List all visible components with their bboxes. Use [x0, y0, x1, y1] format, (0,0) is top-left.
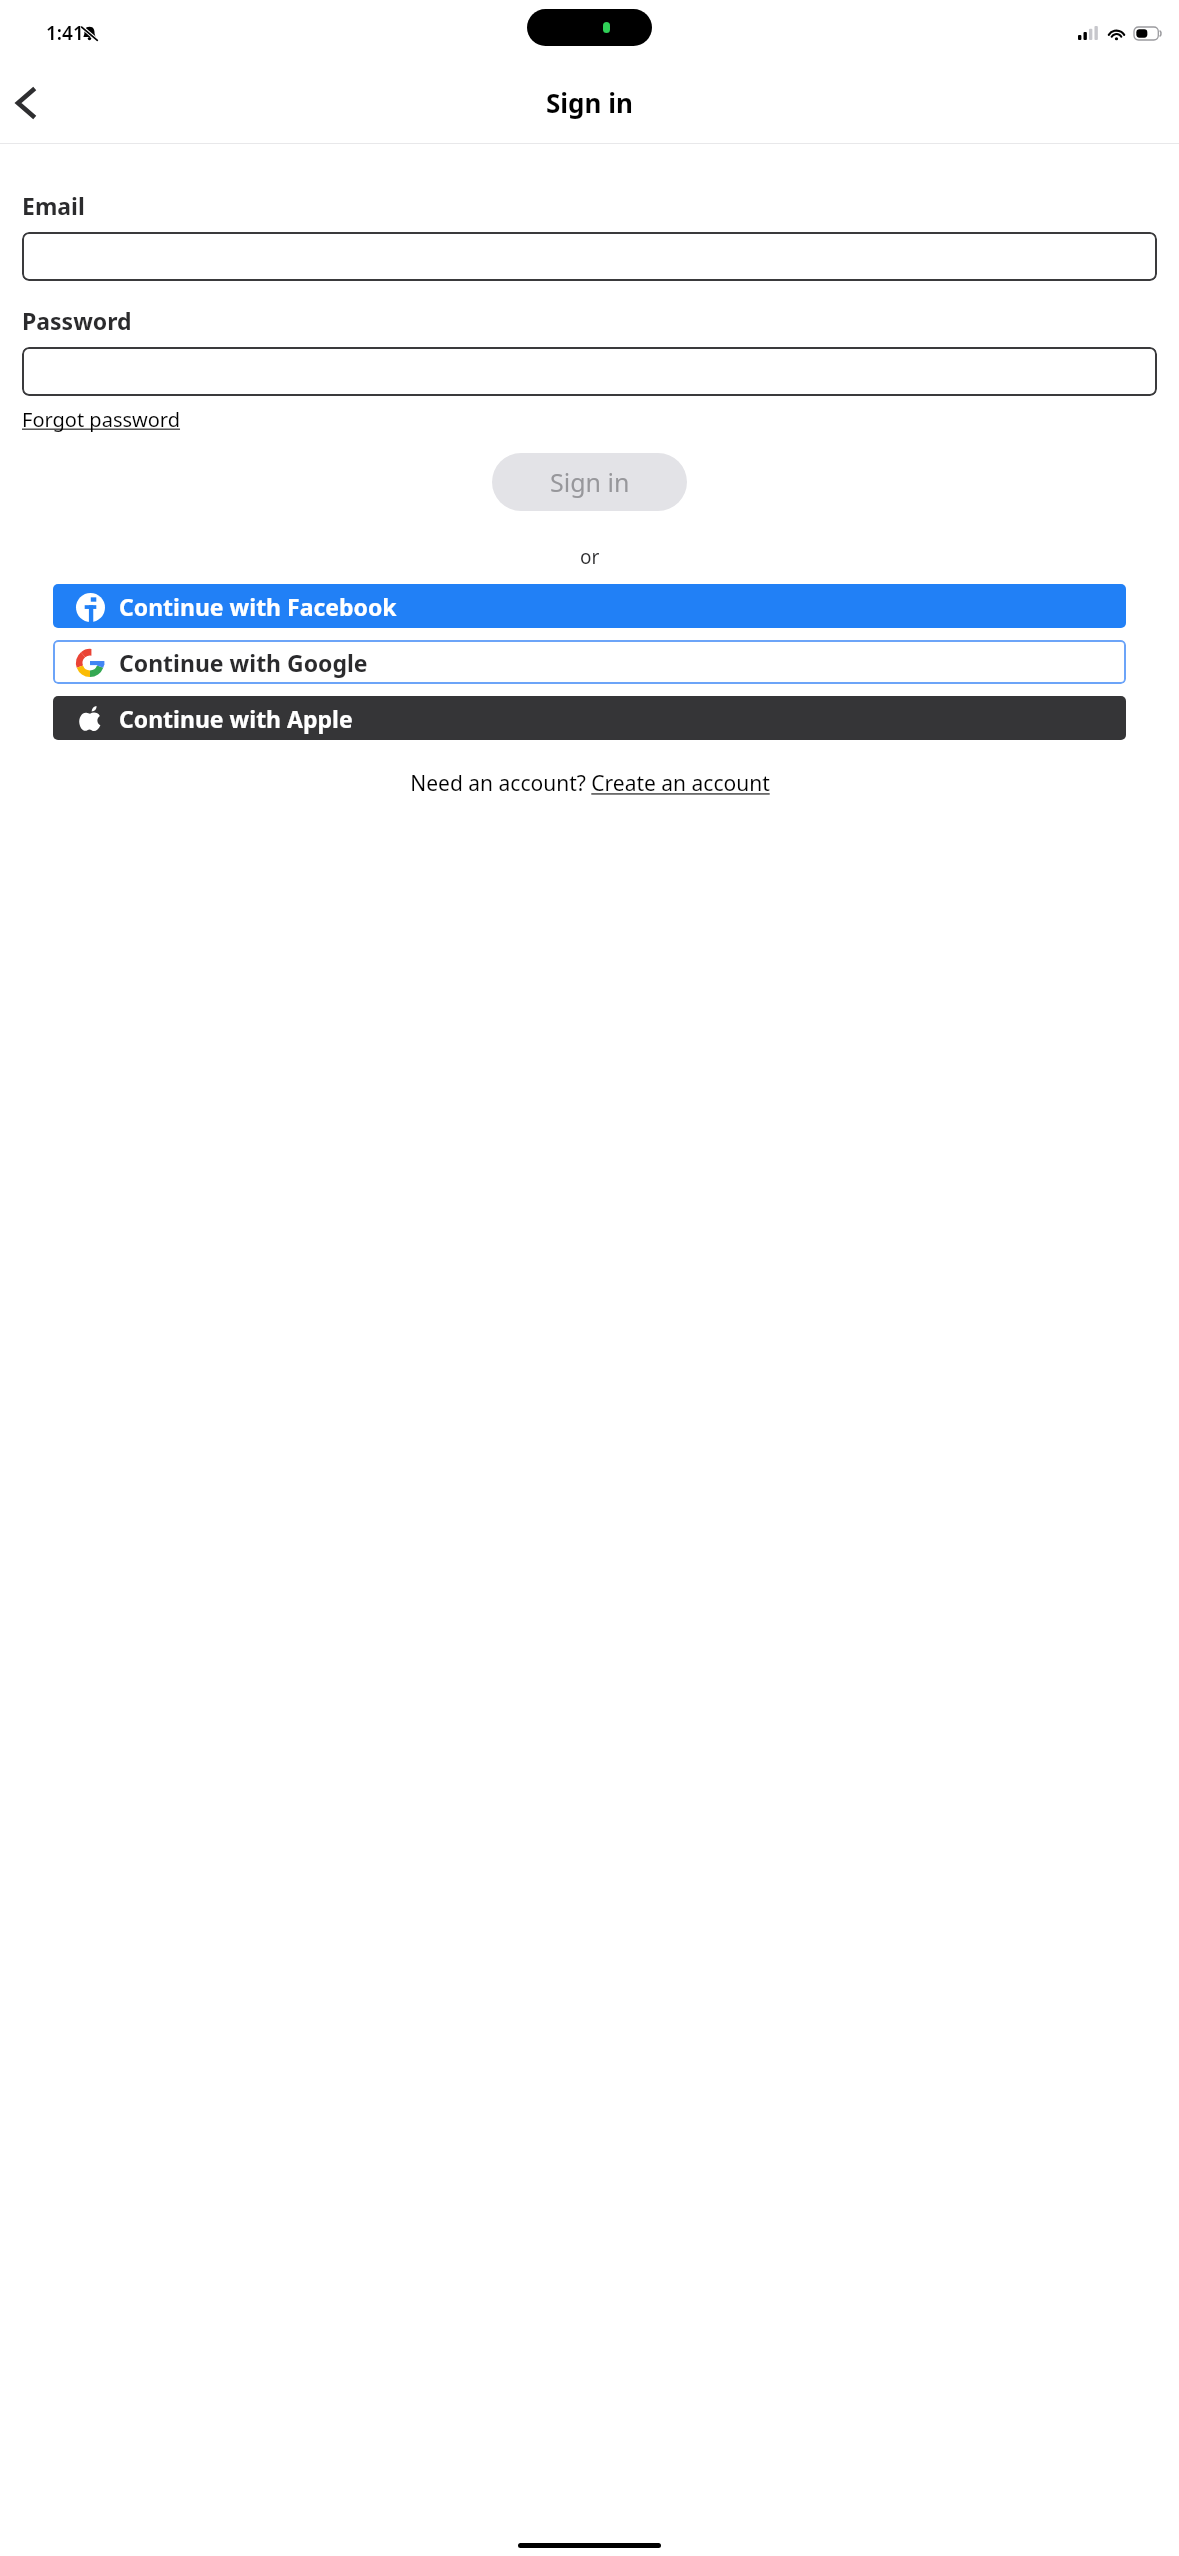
button[interactable]: Continue with Facebook	[53, 584, 1126, 628]
button[interactable]: Need an account? Create an account	[410, 767, 770, 800]
staticText: Continue with Google	[119, 647, 368, 678]
button[interactable]: Continue with Apple	[53, 696, 1126, 740]
button[interactable]: Sign in	[492, 453, 687, 511]
staticText: Forgot password	[22, 406, 181, 433]
staticText: Password	[22, 305, 132, 336]
staticText: Sign in	[550, 465, 630, 499]
staticText: 1:41	[46, 20, 84, 46]
button[interactable]: Continue with Google	[53, 640, 1126, 684]
staticText: Need an account? Create an account	[410, 769, 770, 798]
staticText: Continue with Apple	[119, 703, 353, 734]
staticText: Email	[22, 190, 85, 221]
button[interactable]: Forgot password	[22, 404, 181, 435]
staticText: or	[580, 544, 600, 570]
staticText: Sign in	[546, 85, 633, 120]
button[interactable]: Text field	[22, 347, 1157, 396]
button[interactable]: Back	[0, 75, 56, 131]
button[interactable]: Text field	[22, 232, 1157, 281]
staticText: Continue with Facebook	[119, 591, 397, 622]
